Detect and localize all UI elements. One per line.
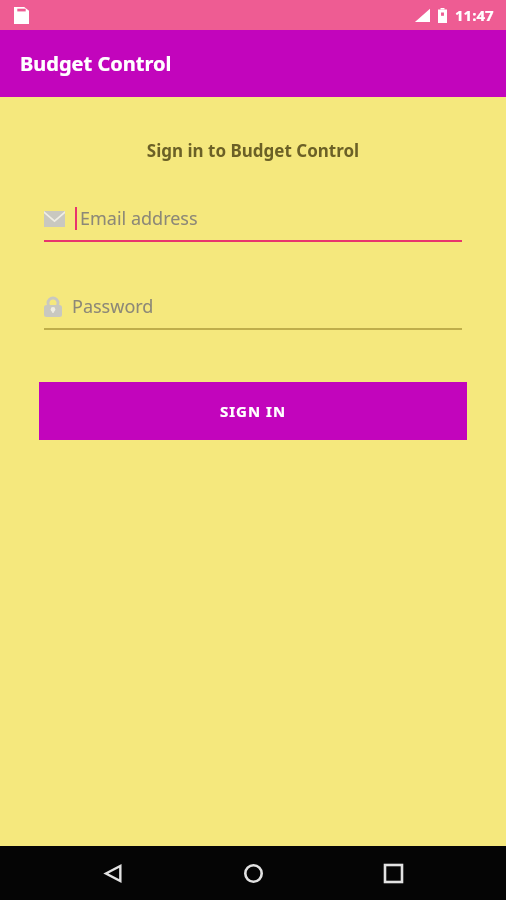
button[interactable]: Home xyxy=(226,846,280,900)
button[interactable]: Password xyxy=(44,294,462,330)
button[interactable]: SIGN IN xyxy=(39,382,467,440)
button[interactable]: Email address xyxy=(44,206,462,242)
staticText: 11:47 xyxy=(455,5,494,25)
button[interactable]: Back xyxy=(86,846,140,900)
staticText: Email address xyxy=(80,206,198,231)
staticText: Budget Control xyxy=(20,50,172,77)
staticText: Password xyxy=(72,294,154,319)
staticText: Sign in to Budget Control xyxy=(0,139,506,162)
staticText: SIGN IN xyxy=(220,401,287,421)
button[interactable]: Recent apps xyxy=(366,846,420,900)
